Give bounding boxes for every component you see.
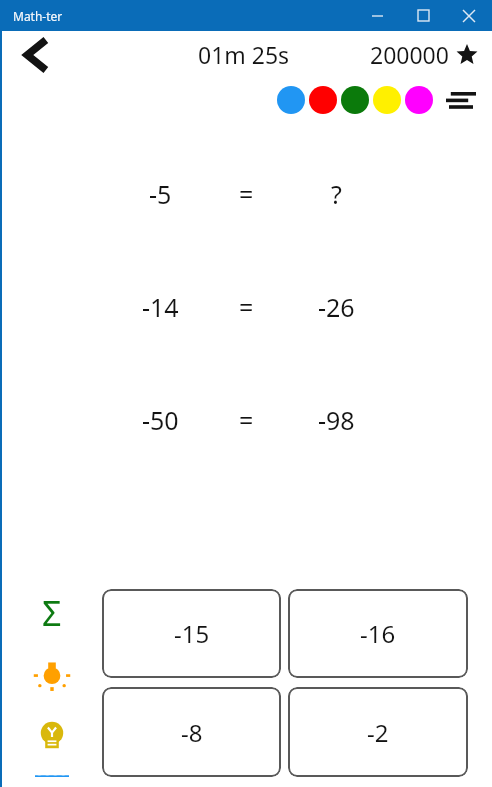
button[interactable]: Colour 2 [340,85,370,115]
staticText: -8 [181,716,203,749]
button[interactable]: Menu [444,83,478,117]
button[interactable]: Back [12,32,58,78]
staticText: = [239,177,254,211]
staticText: Σ [42,590,62,636]
staticText: -2 [367,716,389,749]
staticText: -15 [174,617,210,650]
button[interactable]: Hint light [28,651,76,699]
button[interactable]: -8 [102,687,281,777]
staticText: -50 [142,403,179,437]
button[interactable]: -16 [288,589,468,678]
button[interactable]: Minimize [354,0,400,31]
button[interactable]: Maximize [400,0,446,31]
button[interactable]: Sum [28,589,76,637]
staticText: -26 [318,290,355,324]
button[interactable]: Colour 4 [404,85,434,115]
staticText: ? [331,177,342,211]
button[interactable]: Colour 3 [372,85,402,115]
staticText: = [239,290,254,324]
staticText: -5 [149,177,172,211]
button[interactable]: 200000 [370,39,478,70]
button[interactable]: Video [28,775,76,777]
staticText: -16 [360,617,396,650]
staticText: = [239,403,254,437]
button[interactable]: -15 [102,589,281,678]
staticText: Math-ter [13,8,63,24]
button[interactable]: Colour 0 [276,85,306,115]
button[interactable]: Hint [28,713,76,761]
button[interactable]: Close [446,0,492,31]
staticText: 200000 [370,39,449,70]
button[interactable]: Colour 1 [308,85,338,115]
staticText: -98 [318,403,355,437]
staticText: 01m 25s [198,39,290,70]
button[interactable]: -2 [288,687,468,777]
staticText: -14 [142,290,179,324]
